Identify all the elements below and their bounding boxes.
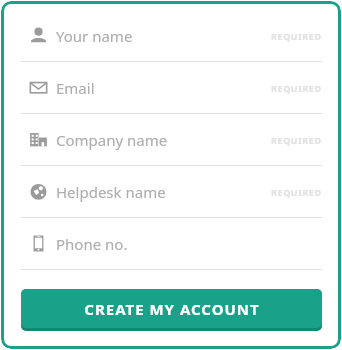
button[interactable]: Helpdesk name bbox=[21, 166, 322, 217]
other: Your name bbox=[21, 26, 55, 45]
other: Phone number bbox=[21, 234, 55, 253]
button[interactable]: Phone number bbox=[21, 218, 322, 269]
staticText: REQUIRED bbox=[271, 186, 322, 198]
staticText: Company name bbox=[56, 130, 168, 150]
button[interactable]: Company name bbox=[21, 114, 322, 165]
button[interactable]: Your name bbox=[21, 10, 322, 61]
button[interactable]: CREATE MY ACCOUNT bbox=[21, 289, 322, 331]
staticText: REQUIRED bbox=[271, 82, 322, 94]
staticText: Helpdesk name bbox=[56, 182, 166, 202]
staticText: REQUIRED bbox=[271, 134, 322, 146]
staticText: Your name bbox=[56, 26, 133, 46]
other: Company name bbox=[21, 130, 55, 149]
button[interactable]: Email bbox=[21, 62, 322, 113]
staticText: REQUIRED bbox=[271, 30, 322, 42]
staticText: Email bbox=[56, 78, 95, 98]
staticText: CREATE MY ACCOUNT bbox=[84, 299, 260, 319]
other: Email bbox=[21, 78, 55, 97]
other: Helpdesk name bbox=[21, 182, 55, 201]
staticText: Phone no. bbox=[56, 234, 128, 254]
